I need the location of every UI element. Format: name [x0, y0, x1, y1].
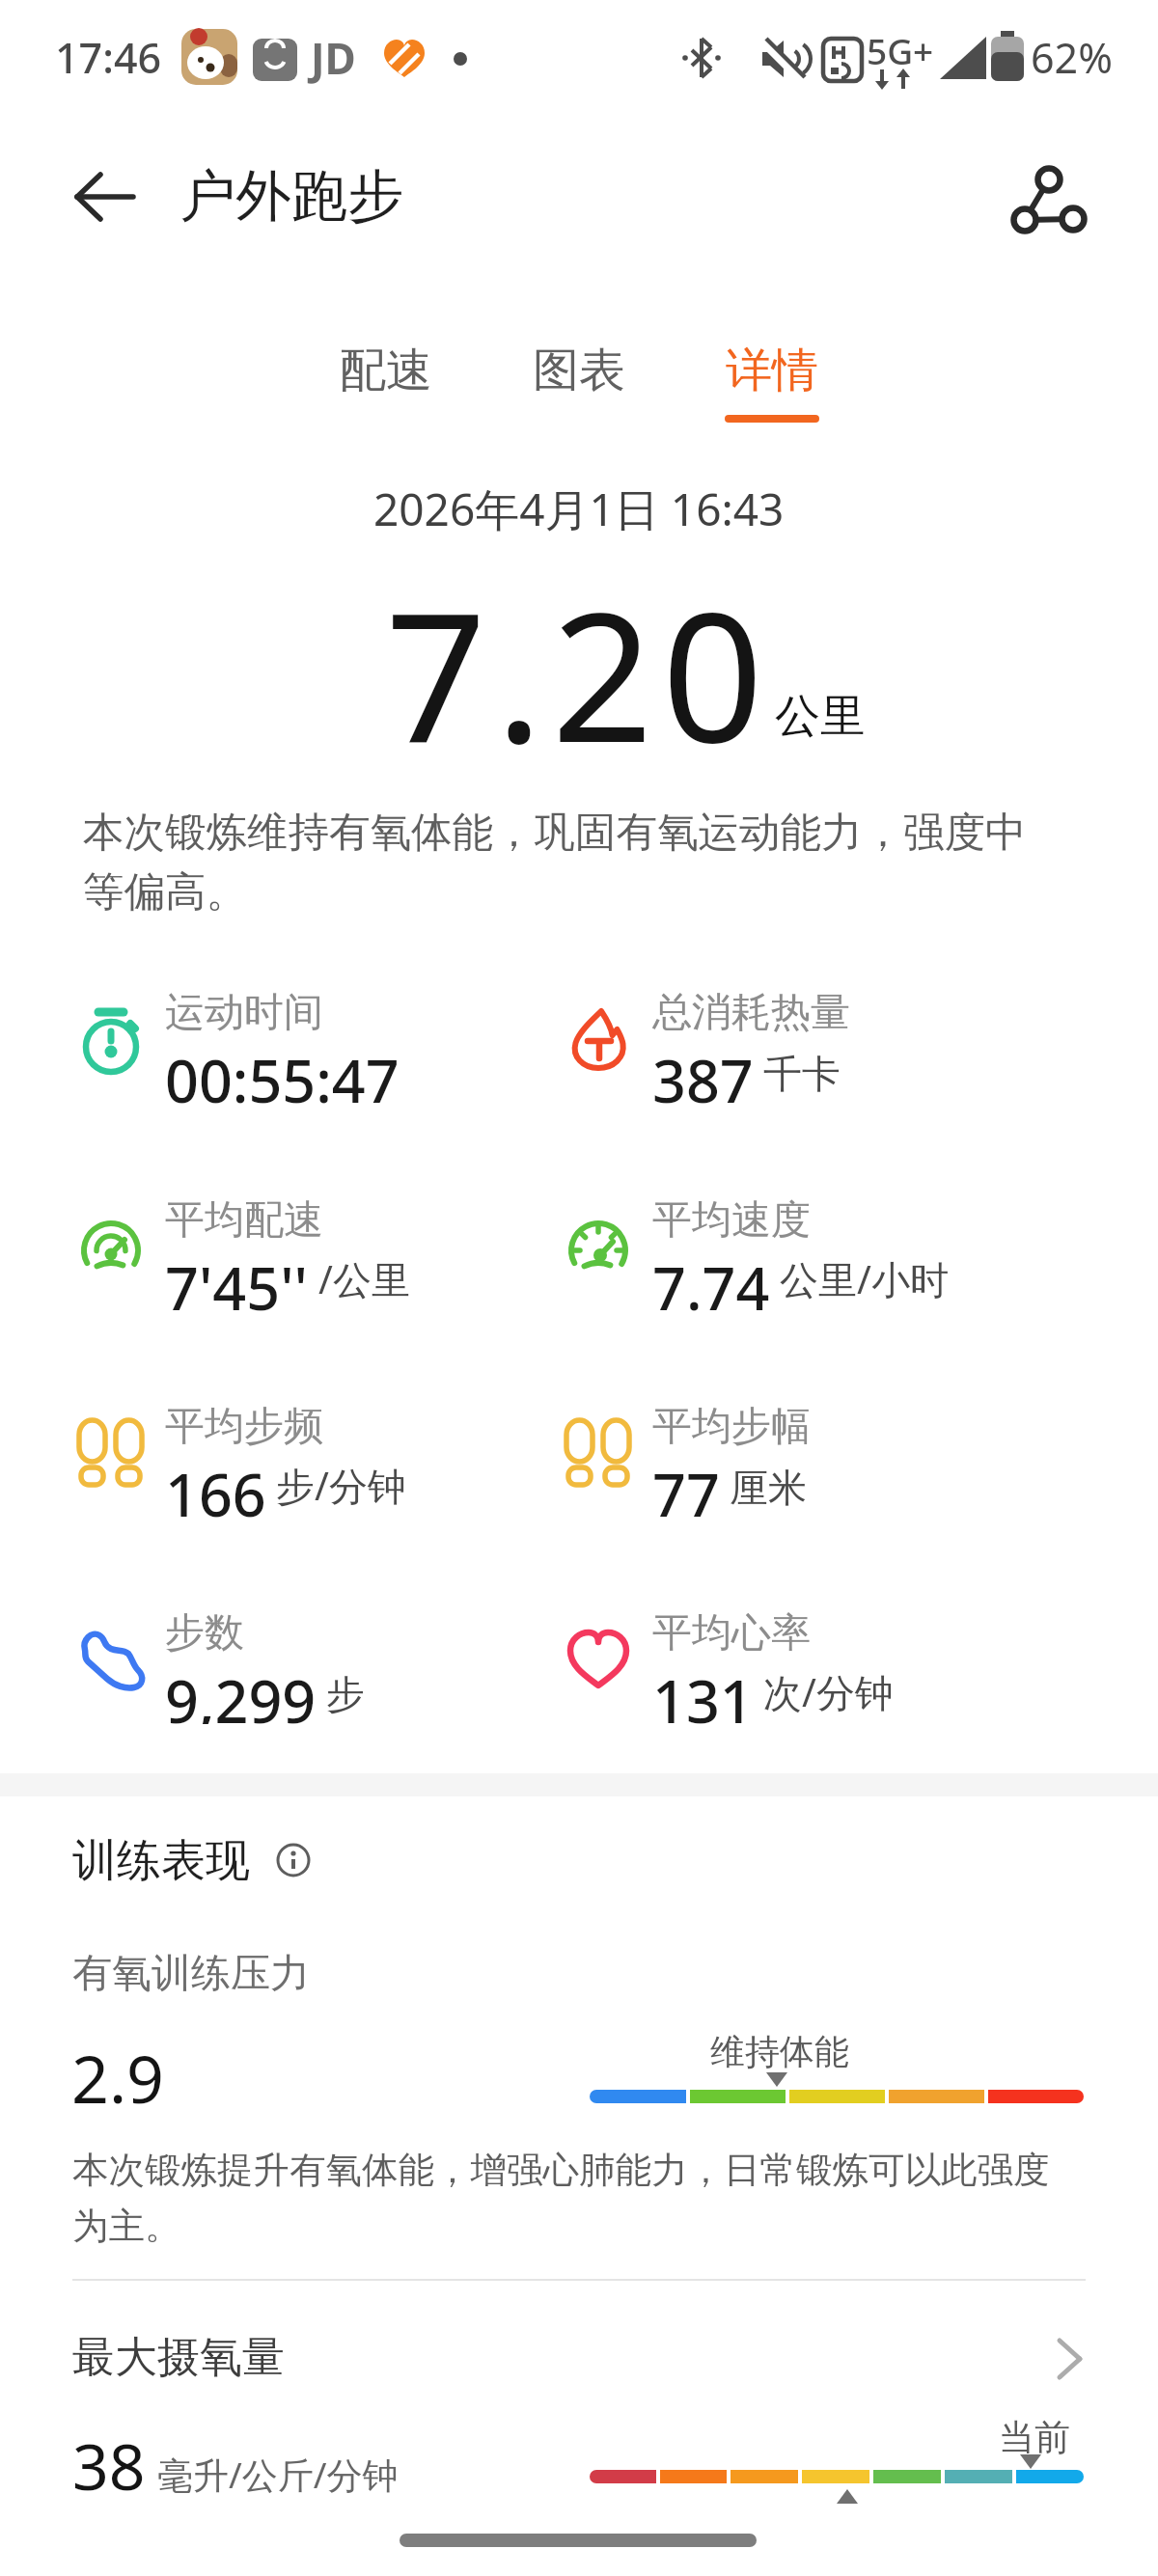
staticText: 387 — [652, 1040, 754, 1104]
staticText: 详情 — [726, 342, 818, 399]
staticText: 17:46 — [55, 29, 162, 86]
staticText: 7.20 — [385, 552, 773, 783]
staticText: 平均步频 — [165, 1402, 323, 1452]
staticText: 毫升/公斤/分钟 — [157, 2450, 399, 2499]
staticText: 166 — [165, 1454, 266, 1518]
button[interactable]: 图表 — [482, 340, 675, 401]
staticText: 千卡 — [763, 1050, 841, 1098]
staticText: 9,299 — [165, 1660, 317, 1724]
staticText: 有氧训练压力 — [72, 1949, 310, 1999]
staticText: 次/分钟 — [763, 1665, 894, 1718]
staticText: 77 — [652, 1454, 720, 1518]
staticText: 00:55:47 — [165, 1040, 400, 1104]
staticText: 步 — [326, 1670, 365, 1718]
staticText: 7.74 — [652, 1247, 770, 1311]
button[interactable]: 配速 — [289, 340, 482, 401]
staticText: 平均步幅 — [652, 1402, 811, 1452]
staticText: 2.9 — [71, 2033, 165, 2123]
staticText: 2026年4月1日 16:43 — [373, 479, 785, 539]
button[interactable]: 详情 — [675, 340, 868, 401]
staticText: 维持体能 — [710, 2030, 849, 2073]
staticText: 本次锻炼提升有氧体能，增强心肺能力，日常锻炼可以此强度 为主。 — [72, 2148, 1050, 2249]
staticText: 平均速度 — [652, 1195, 811, 1246]
staticText: 户外跑步 — [179, 161, 403, 232]
button[interactable] — [58, 2316, 1100, 2402]
staticText: 总消耗热量 — [652, 988, 850, 1038]
staticText: 步数 — [165, 1608, 244, 1658]
staticText: /公里 — [318, 1252, 410, 1305]
staticText: 本次锻炼维持有氧体能，巩固有氧运动能力，强度中 等偏高。 — [83, 807, 1027, 918]
staticText: 运动时间 — [165, 988, 323, 1038]
staticText: 131 — [652, 1660, 754, 1724]
button[interactable] — [975, 135, 1098, 259]
staticText: 公里/小时 — [780, 1252, 949, 1305]
staticText: 平均配速 — [165, 1195, 323, 1246]
staticText: 图表 — [533, 342, 625, 399]
staticText: 厘米 — [730, 1464, 807, 1512]
staticText: 训练表现 — [72, 1833, 250, 1889]
staticText: 5G+ — [867, 26, 934, 74]
staticText: JD — [311, 29, 356, 87]
staticText: 配速 — [340, 342, 432, 399]
staticText: 38 — [72, 2422, 146, 2508]
staticText: 公里 — [775, 688, 866, 745]
staticText: 当前 — [999, 2415, 1070, 2460]
staticText: 最大摄氧量 — [72, 2331, 285, 2384]
staticText: 7'45'' — [165, 1247, 309, 1311]
staticText: 62% — [1031, 29, 1113, 86]
button[interactable] — [272, 1839, 315, 1881]
staticText: 步/分钟 — [276, 1459, 406, 1512]
staticText: 平均心率 — [652, 1608, 811, 1658]
button[interactable] — [58, 154, 151, 247]
